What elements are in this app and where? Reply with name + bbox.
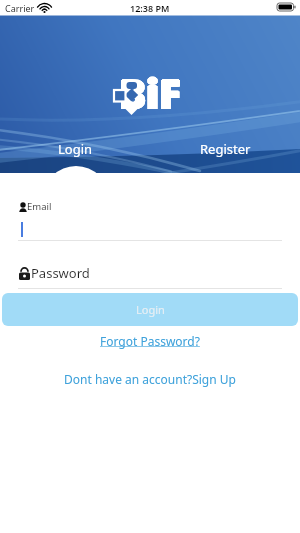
staticText: BiF	[118, 66, 180, 120]
staticText: Password	[31, 264, 90, 282]
button[interactable]: Dont have an account?Sign Up	[64, 371, 236, 387]
staticText: BiF	[120, 66, 182, 120]
staticText: Register	[200, 140, 251, 158]
staticText: 12:38 PM	[130, 2, 170, 14]
staticText: BiF	[119, 66, 181, 120]
button[interactable]: Login	[0, 139, 150, 158]
staticText: Forgot Password?	[100, 333, 200, 349]
staticText: BiF	[119, 66, 181, 120]
button[interactable]: Register	[150, 139, 300, 158]
button[interactable]	[18, 264, 282, 288]
staticText: BiF	[120, 66, 182, 120]
staticText: Login	[136, 302, 165, 317]
staticText: BiF	[119, 65, 181, 119]
staticText: Dont have an account?Sign Up	[64, 371, 236, 387]
button[interactable]: Forgot Password?	[100, 333, 200, 349]
button[interactable]	[18, 214, 282, 241]
staticText: BiF	[118, 66, 180, 120]
staticText: Email	[27, 200, 52, 213]
staticText: Login	[58, 140, 93, 158]
staticText: Carrier	[5, 2, 35, 14]
button[interactable]: Login	[2, 293, 298, 326]
